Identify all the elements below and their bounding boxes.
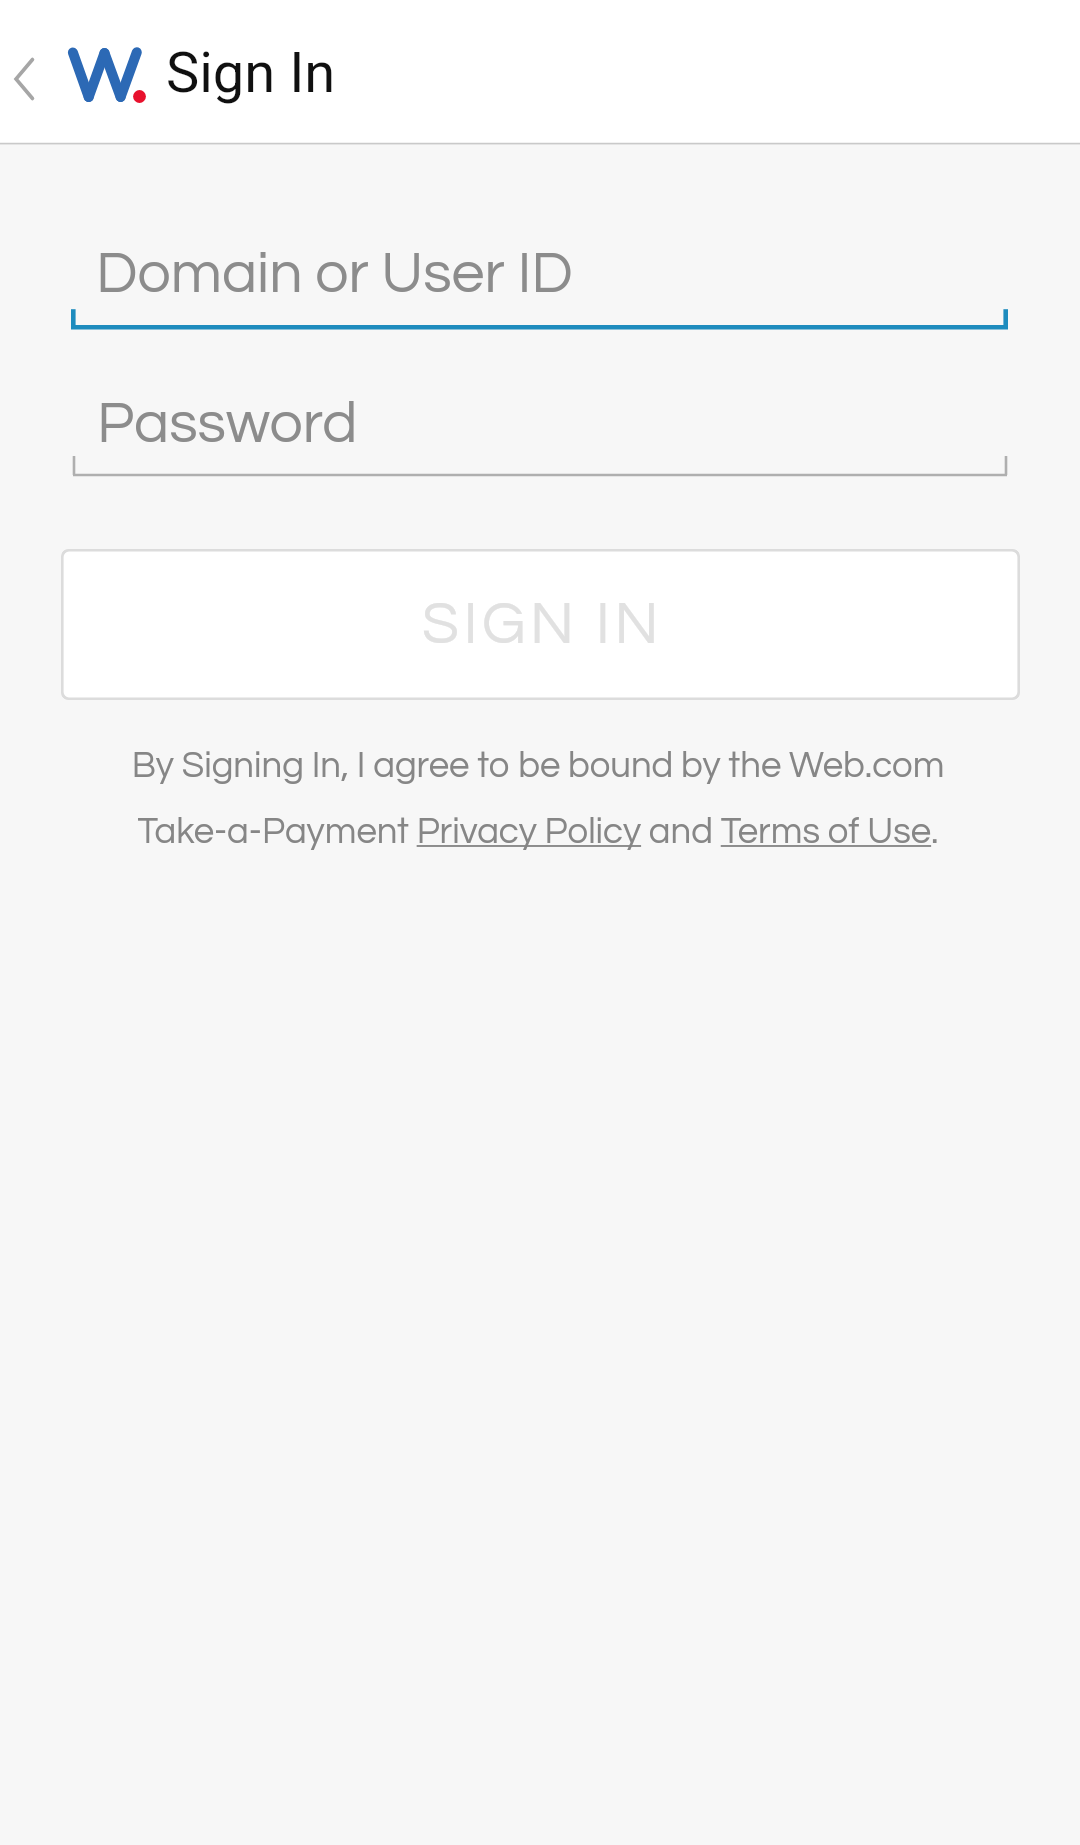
staticText: Domain or User ID bbox=[96, 244, 573, 305]
staticText: SIGN IN bbox=[422, 594, 663, 656]
staticText: Password bbox=[97, 394, 358, 455]
staticText: By Signing In, I agree to be bound by th… bbox=[93, 747, 983, 850]
other: Web.com logo bbox=[60, 40, 156, 110]
button[interactable]: SIGN IN bbox=[61, 549, 1020, 700]
button[interactable]: Privacy Policy bbox=[417, 805, 639, 855]
staticText: Sign In bbox=[166, 40, 336, 106]
button[interactable]: Terms of Use bbox=[722, 805, 938, 855]
button[interactable]: Back bbox=[0, 0, 62, 145]
button[interactable]: Password bbox=[60, 365, 1020, 481]
button[interactable]: Domain or User ID bbox=[60, 215, 1020, 333]
